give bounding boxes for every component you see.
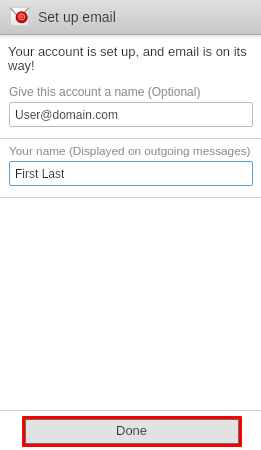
staticText: Your name (Displayed on outgoing message… <box>9 144 251 157</box>
staticText: First Last <box>15 167 65 180</box>
staticText: User@domain.com <box>15 108 118 121</box>
staticText: Done <box>116 423 148 438</box>
button[interactable]: Done <box>25 419 239 444</box>
button[interactable]: User@domain.com <box>9 102 253 127</box>
button[interactable]: First Last <box>9 161 253 186</box>
staticText: Give this account a name (Optional) <box>9 85 201 98</box>
staticText: Your account is set up, and email is on … <box>8 44 253 73</box>
staticText: Set up email <box>38 9 116 25</box>
